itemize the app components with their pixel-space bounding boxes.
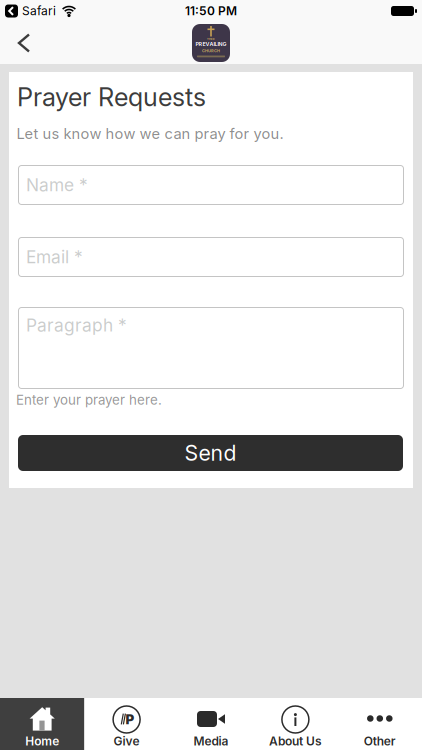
- staticText: PREVAILING: [195, 41, 226, 47]
- staticText: Prayer Requests: [17, 82, 206, 112]
- staticText: 11:50 PM: [185, 4, 237, 18]
- staticText: CHURCH: [202, 48, 220, 53]
- button[interactable]: Other: [338, 698, 422, 750]
- button[interactable]: Back: [0, 25, 43, 61]
- button[interactable]: Email *: [18, 237, 404, 277]
- staticText: Enter your prayer here.: [16, 392, 162, 408]
- button[interactable]: Media: [169, 698, 253, 750]
- button[interactable]: Send: [18, 435, 403, 471]
- button[interactable]: Paragraph *: [18, 307, 404, 389]
- staticText: Send: [184, 440, 236, 466]
- button[interactable]: Name *: [18, 165, 404, 205]
- staticText: About Us: [269, 734, 322, 748]
- staticText: THEE: [207, 37, 215, 41]
- button[interactable]: Home: [0, 698, 84, 750]
- staticText: Paragraph *: [26, 315, 127, 335]
- staticText: Email *: [26, 247, 83, 267]
- staticText: P: [126, 712, 135, 727]
- staticText: Give: [114, 734, 140, 748]
- button[interactable]: Give: [84, 698, 169, 750]
- button[interactable]: About Us: [253, 698, 338, 750]
- staticText: Let us know how we can pray for you.: [16, 125, 283, 142]
- staticText: Safari: [22, 4, 56, 18]
- staticText: Home: [25, 734, 59, 748]
- staticText: Other: [364, 734, 396, 748]
- staticText: Media: [193, 734, 228, 748]
- staticText: Name *: [26, 175, 88, 195]
